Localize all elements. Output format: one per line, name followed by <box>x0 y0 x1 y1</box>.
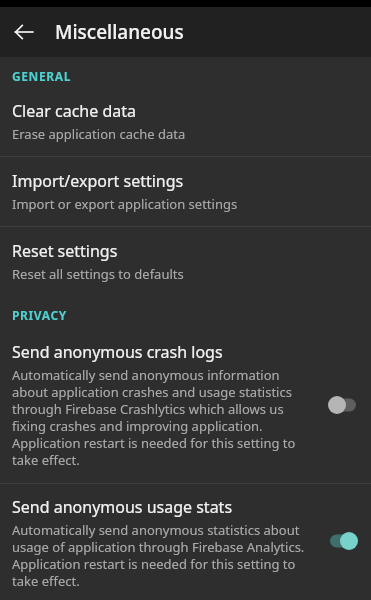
staticText: Import or export application settings <box>12 195 238 213</box>
button[interactable]: Reset settings <box>0 227 371 296</box>
staticText: PRIVACY <box>12 307 67 323</box>
button[interactable]: Send anonymous crash logs <box>0 329 371 483</box>
staticText: Import/export settings <box>12 170 184 192</box>
button[interactable]: Clear cache data <box>0 90 371 156</box>
staticText: Clear cache data <box>12 100 136 122</box>
staticText: Erase application cache data <box>12 125 186 143</box>
other: On <box>325 530 361 552</box>
button[interactable]: Back <box>0 8 48 56</box>
staticText: Send anonymous crash logs <box>12 341 223 363</box>
staticText: Reset all settings to defaults <box>12 265 184 283</box>
other: Off <box>325 394 361 416</box>
staticText: Send anonymous usage stats <box>12 496 233 518</box>
staticText: Reset settings <box>12 240 118 262</box>
button[interactable]: Send anonymous usage stats <box>0 484 371 600</box>
staticText: Automatically send anonymous information… <box>12 366 317 469</box>
button[interactable]: Import/export settings <box>0 157 371 226</box>
staticText: GENERAL <box>12 68 71 84</box>
staticText: Miscellaneous <box>55 19 184 45</box>
staticText: Automatically send anonymous statistics … <box>12 521 317 586</box>
